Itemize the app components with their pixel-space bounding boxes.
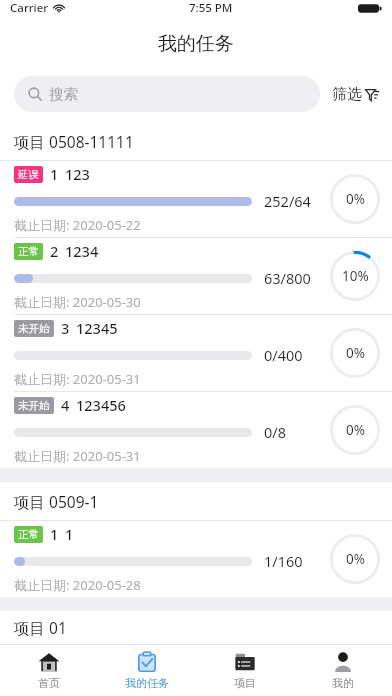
staticText: 1 <box>65 524 74 544</box>
staticText: 项目 01 <box>14 617 67 638</box>
staticText: 项目 0509-1 <box>14 491 99 512</box>
staticText: 搜索 <box>49 85 78 103</box>
staticText: 0% <box>346 190 365 208</box>
staticText: 252/64 <box>264 191 311 211</box>
button[interactable]: 首页 <box>0 645 98 696</box>
staticText: 截止日期: 2020-05-30 <box>14 293 141 311</box>
staticText: 筛选 <box>332 85 362 104</box>
staticText: 未开始 <box>18 399 50 412</box>
staticText: 项目 <box>234 676 256 690</box>
staticText: 截止日期: 2020-05-28 <box>14 576 141 594</box>
button[interactable]: 我的任务 <box>98 645 196 696</box>
button[interactable]: 项目 0509-1 <box>0 482 392 520</box>
staticText: 我的 <box>332 676 354 690</box>
staticText: 1234 <box>65 241 99 261</box>
staticText: 123 <box>65 164 90 184</box>
button[interactable]: 搜索 <box>14 76 320 112</box>
staticText: 10% <box>342 267 369 285</box>
staticText: 延误 <box>18 168 39 181</box>
staticText: 首页 <box>38 676 60 690</box>
button[interactable]: 我的 <box>294 645 392 696</box>
staticText: 63/800 <box>264 268 311 288</box>
staticText: 0/8 <box>264 422 286 442</box>
button[interactable]: 正常 <box>0 238 392 315</box>
button[interactable]: 延误 <box>0 161 392 238</box>
staticText: 2 <box>50 241 59 261</box>
staticText: 0% <box>346 344 365 362</box>
button[interactable]: 筛选 <box>330 79 382 110</box>
staticText: Carrier <box>10 0 49 16</box>
button[interactable]: 项目 <box>196 645 294 696</box>
staticText: 项目 0508-11111 <box>14 131 134 152</box>
staticText: 123456 <box>76 395 126 415</box>
staticText: 12345 <box>76 318 118 338</box>
staticText: 7:55 PM <box>189 0 233 16</box>
staticText: 0/400 <box>264 345 303 365</box>
button[interactable]: 项目 01 <box>0 611 392 644</box>
button[interactable]: 正常 <box>0 521 392 597</box>
staticText: 截止日期: 2020-05-31 <box>14 447 141 465</box>
staticText: 我的任务 <box>158 32 234 56</box>
staticText: 3 <box>61 318 70 338</box>
button[interactable]: 未开始 <box>0 315 392 392</box>
button[interactable]: 项目 0508-11111 <box>0 122 392 160</box>
staticText: 1 <box>50 524 59 544</box>
staticText: 1 <box>50 164 59 184</box>
staticText: 未开始 <box>18 322 50 335</box>
staticText: 4 <box>61 395 70 415</box>
staticText: 1/160 <box>264 551 303 571</box>
staticText: 0% <box>346 550 365 568</box>
staticText: 我的任务 <box>125 676 169 690</box>
staticText: 正常 <box>18 245 39 258</box>
staticText: 截止日期: 2020-05-31 <box>14 370 141 388</box>
staticText: 0% <box>346 421 365 439</box>
button[interactable]: 未开始 <box>0 392 392 468</box>
other: 筛选 <box>365 87 380 102</box>
staticText: 截止日期: 2020-05-22 <box>14 216 141 234</box>
staticText: 正常 <box>18 528 39 541</box>
